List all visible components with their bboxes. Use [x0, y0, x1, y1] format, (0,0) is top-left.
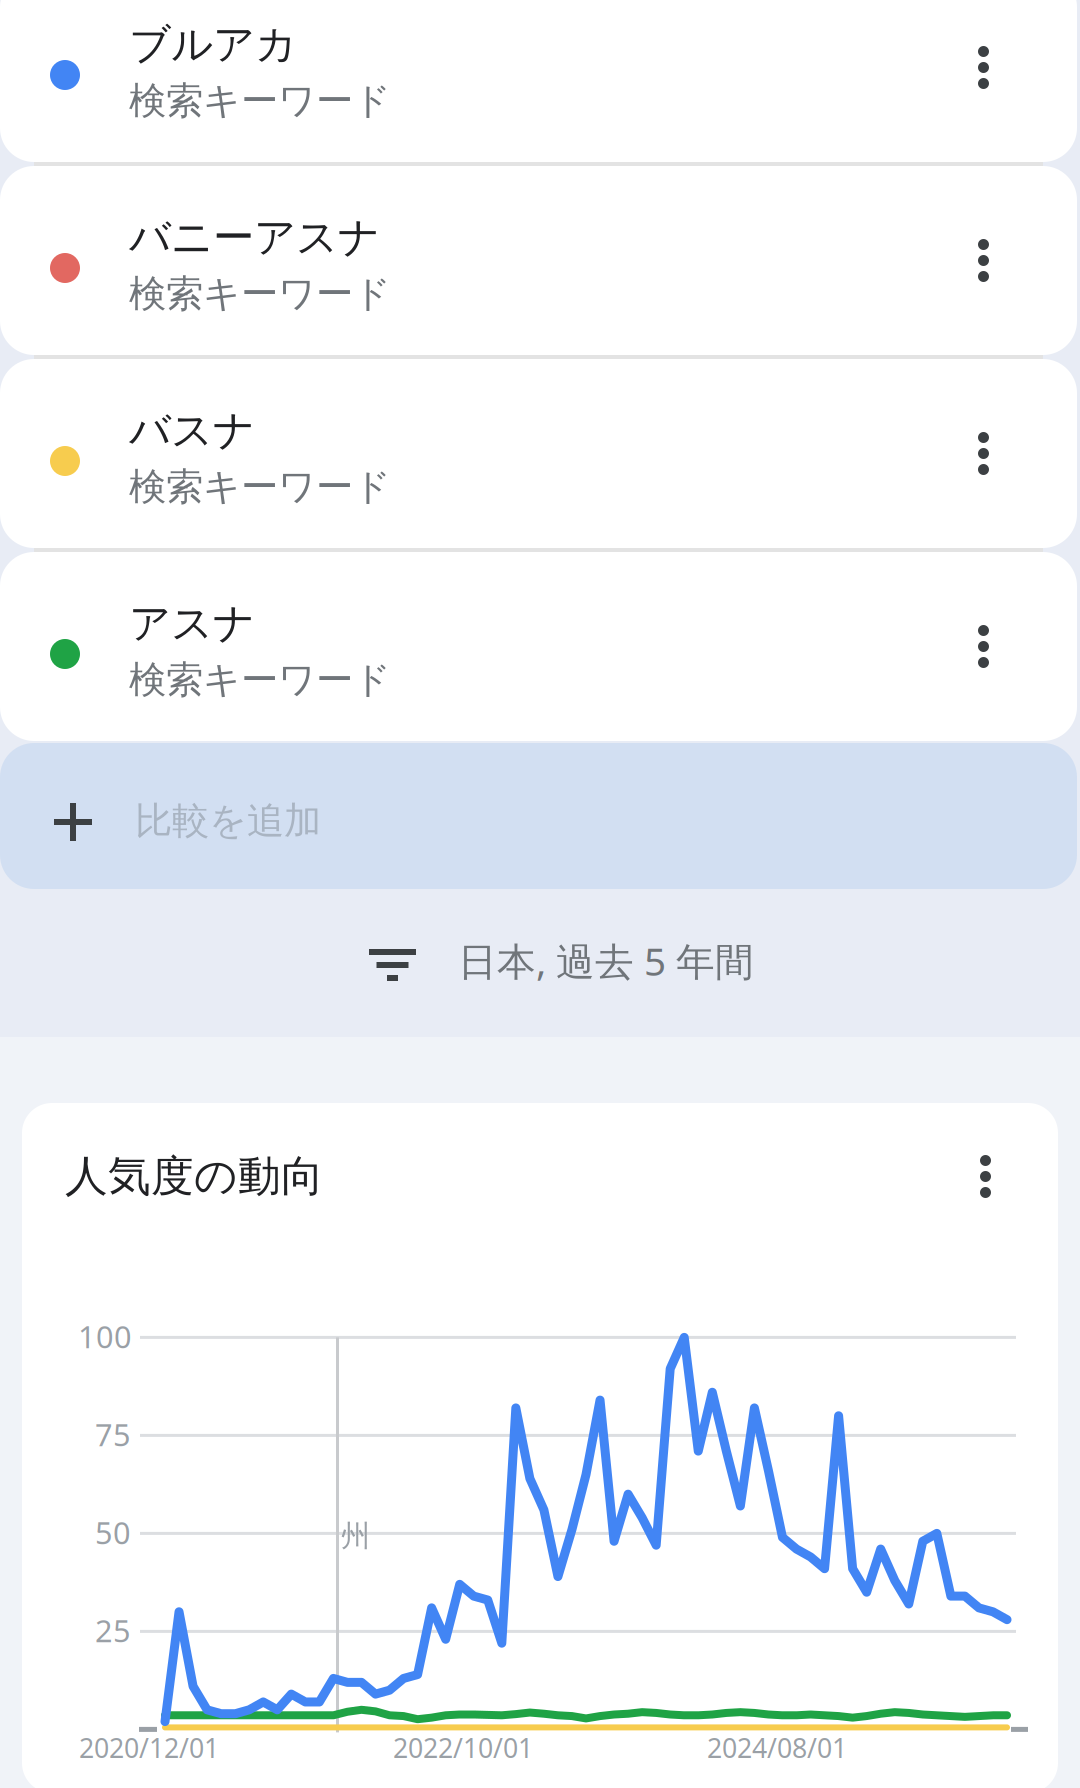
- staticText: 25: [95, 1610, 131, 1651]
- staticText: バニーアスナ: [129, 212, 380, 263]
- staticText: ブルアカ: [129, 19, 297, 70]
- staticText: 州: [341, 1518, 370, 1554]
- button[interactable]: バニーアスナ: [0, 166, 1080, 355]
- staticText: 比較を追加: [135, 798, 321, 844]
- button[interactable]: アスナ: [0, 552, 1080, 741]
- button[interactable]: バスナ: [0, 359, 1080, 548]
- staticText: 2022/10/01: [393, 1730, 533, 1765]
- staticText: 日本, 過去 5 年間: [458, 935, 754, 986]
- staticText: 人気度の動向: [65, 1150, 324, 1202]
- button[interactable]: グラフのオプション: [956, 1131, 1015, 1222]
- staticText: 50: [95, 1512, 131, 1553]
- staticText: 検索キーワード: [129, 464, 391, 510]
- button[interactable]: 比較を追加: [0, 743, 1080, 889]
- staticText: 75: [95, 1414, 131, 1455]
- staticText: 2020/12/01: [79, 1730, 219, 1765]
- staticText: 検索キーワード: [129, 78, 391, 124]
- button[interactable]: 日本, 過去 5 年間: [0, 889, 1080, 1037]
- staticText: 検索キーワード: [129, 271, 391, 317]
- staticText: 2024/08/01: [707, 1730, 847, 1765]
- staticText: アスナ: [129, 598, 255, 649]
- button[interactable]: ブルアカ: [0, 0, 1080, 162]
- staticText: バスナ: [129, 405, 255, 456]
- staticText: 検索キーワード: [129, 657, 391, 703]
- staticText: 100: [78, 1316, 132, 1357]
